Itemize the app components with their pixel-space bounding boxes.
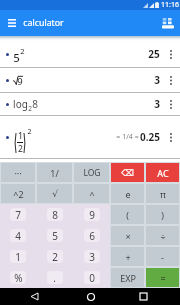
staticText: 2 bbox=[28, 104, 32, 113]
staticText: 2 bbox=[52, 250, 58, 264]
staticText: ^2 bbox=[13, 188, 24, 200]
staticText: 4 bbox=[15, 229, 21, 243]
staticText: 1 bbox=[18, 130, 23, 142]
staticText: 1 bbox=[15, 250, 21, 264]
button[interactable]: ^ bbox=[74, 184, 109, 203]
staticText: AC bbox=[157, 167, 169, 179]
staticText: 1/ bbox=[50, 167, 59, 179]
button[interactable]: More options bbox=[165, 95, 176, 113]
staticText: 9 bbox=[17, 75, 23, 88]
button[interactable]: 5 bbox=[36, 225, 73, 246]
button[interactable]: EXP bbox=[111, 268, 144, 287]
staticText: 3 bbox=[154, 97, 160, 111]
staticText: 7 bbox=[15, 208, 21, 222]
button[interactable]: More options bbox=[165, 71, 176, 89]
staticText: calculator bbox=[23, 17, 64, 29]
staticText: 2 bbox=[20, 46, 25, 56]
staticText: ^ bbox=[89, 188, 95, 200]
button[interactable]: 0 bbox=[73, 267, 110, 288]
button[interactable]: ÷ bbox=[146, 226, 179, 245]
button[interactable]: ) bbox=[146, 205, 179, 224]
button[interactable]: × bbox=[111, 226, 144, 245]
button[interactable]: 1 bbox=[0, 246, 36, 267]
button[interactable]: 5 bbox=[0, 41, 180, 67]
staticText: 5 bbox=[13, 50, 20, 66]
staticText: 6 bbox=[89, 229, 95, 243]
staticText: = 1/4 = bbox=[115, 132, 140, 142]
button[interactable]: Home bbox=[82, 288, 99, 305]
button[interactable]: 3 bbox=[73, 246, 110, 267]
button[interactable]: 9 bbox=[0, 68, 180, 92]
button[interactable]: 9 bbox=[73, 204, 110, 225]
button[interactable]: e bbox=[111, 184, 144, 203]
button[interactable]: Show keypad bbox=[159, 14, 177, 32]
staticText: √ bbox=[52, 189, 58, 199]
staticText: ··· bbox=[14, 167, 22, 179]
button[interactable]: LOG bbox=[74, 163, 109, 182]
staticText: 8 bbox=[32, 97, 38, 111]
staticText: EXP bbox=[120, 272, 136, 284]
staticText: % bbox=[14, 271, 23, 285]
staticText: ⌫ bbox=[121, 168, 134, 178]
staticText: - bbox=[161, 251, 164, 263]
button[interactable]: - bbox=[146, 247, 179, 266]
button[interactable]: Recent apps bbox=[135, 288, 152, 305]
button[interactable]: 7 bbox=[0, 204, 36, 225]
button[interactable]: + bbox=[111, 247, 144, 266]
staticText: ) bbox=[161, 209, 164, 221]
button[interactable]: Open navigation menu bbox=[3, 14, 21, 32]
button[interactable]: 1 bbox=[0, 116, 180, 158]
button[interactable]: More options bbox=[165, 128, 176, 146]
button[interactable]: ^2 bbox=[1, 184, 35, 203]
button[interactable]: 2 bbox=[36, 246, 73, 267]
staticText: 0 bbox=[89, 271, 95, 285]
staticText: . bbox=[53, 271, 56, 285]
button[interactable]: Back bbox=[26, 288, 43, 305]
button[interactable]: π bbox=[146, 184, 179, 203]
staticText: 9 bbox=[89, 208, 95, 222]
staticText: × bbox=[125, 230, 131, 242]
staticText: 3 bbox=[89, 250, 95, 264]
staticText: 3 bbox=[154, 73, 160, 87]
staticText: LOG bbox=[83, 167, 101, 179]
staticText: 8 bbox=[52, 208, 58, 222]
staticText: 0.25 bbox=[140, 130, 160, 144]
button[interactable]: = bbox=[146, 268, 179, 287]
button[interactable]: More options bbox=[165, 45, 176, 63]
button[interactable]: 1/ bbox=[37, 163, 72, 182]
staticText: + bbox=[125, 251, 131, 263]
button[interactable]: √ bbox=[37, 184, 72, 203]
button[interactable]: ⌫ bbox=[111, 163, 144, 182]
staticText: π bbox=[160, 188, 166, 200]
staticText: e bbox=[125, 188, 131, 200]
button[interactable]: 8 bbox=[36, 204, 73, 225]
staticText: = bbox=[160, 272, 166, 284]
staticText: ÷ bbox=[160, 230, 166, 242]
staticText: 25 bbox=[148, 47, 160, 61]
button[interactable]: % bbox=[0, 267, 36, 288]
button[interactable]: ( bbox=[111, 205, 144, 224]
staticText: 2 bbox=[27, 127, 32, 137]
button[interactable]: 6 bbox=[73, 225, 110, 246]
button[interactable]: AC bbox=[146, 163, 179, 182]
staticText: ( bbox=[126, 209, 129, 221]
staticText: 11:16 bbox=[161, 0, 179, 10]
button[interactable]: log bbox=[0, 93, 180, 115]
staticText: 2 bbox=[18, 143, 23, 155]
button[interactable]: ··· bbox=[1, 163, 35, 182]
staticText: log bbox=[13, 97, 28, 111]
staticText: 5 bbox=[52, 229, 58, 243]
button[interactable]: . bbox=[36, 267, 73, 288]
button[interactable]: 4 bbox=[0, 225, 36, 246]
